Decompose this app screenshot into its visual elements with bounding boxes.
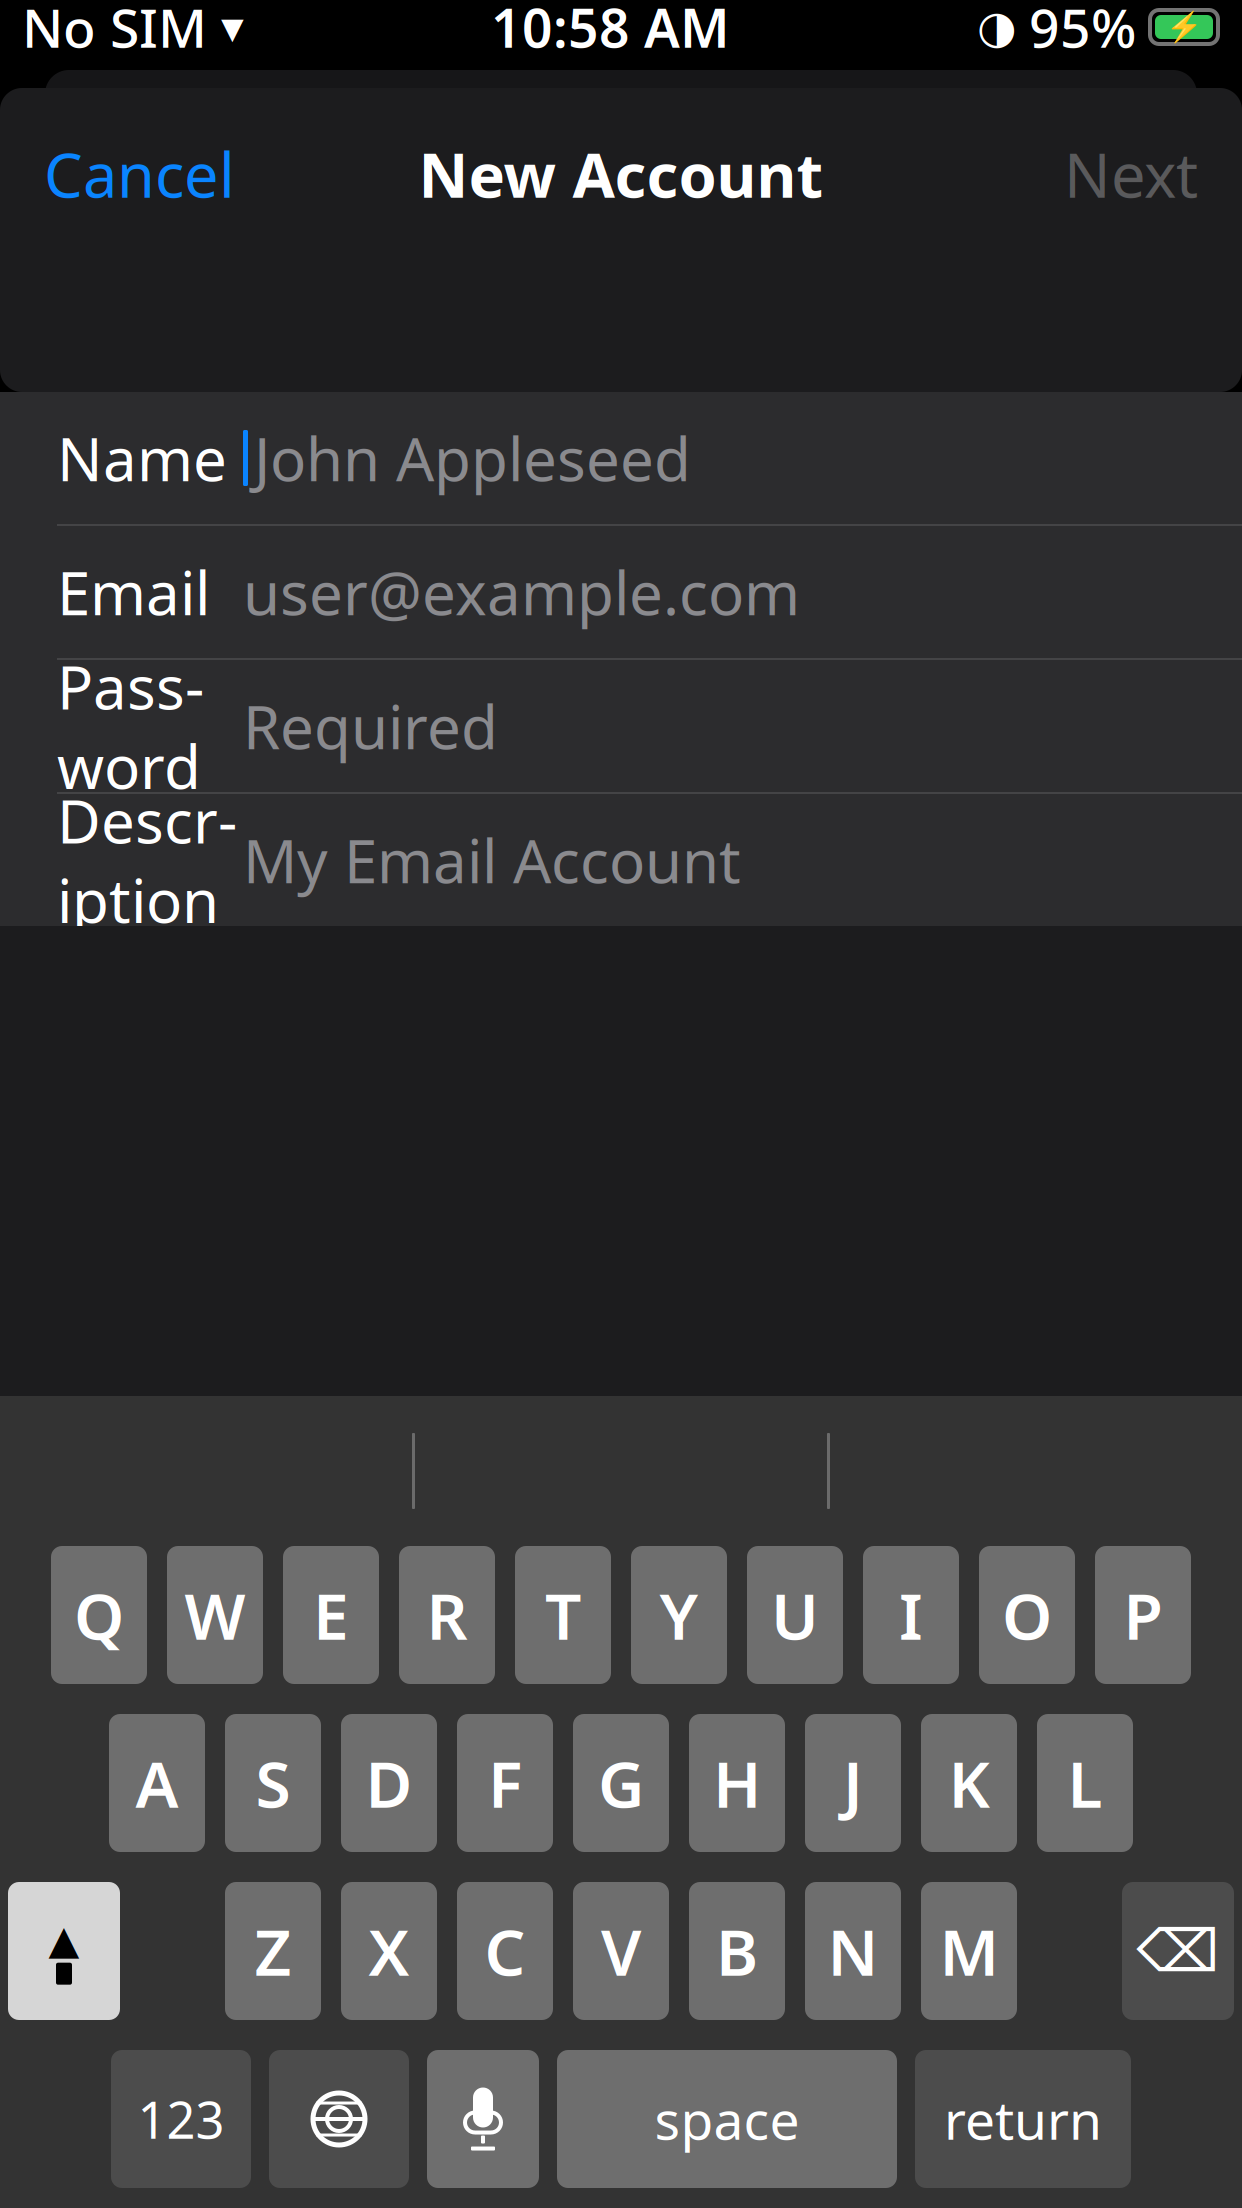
button[interactable]: C bbox=[457, 1882, 553, 2020]
staticText: M bbox=[939, 1908, 998, 1993]
staticText: J bbox=[843, 1740, 863, 1825]
button[interactable]: E bbox=[283, 1546, 379, 1684]
staticText: E bbox=[313, 1572, 349, 1657]
staticText: Required bbox=[243, 686, 498, 766]
staticText: Y bbox=[659, 1572, 698, 1657]
button[interactable]: L bbox=[1037, 1714, 1133, 1852]
button[interactable]: Delete bbox=[1122, 1882, 1234, 2020]
button[interactable]: Y bbox=[631, 1546, 727, 1684]
button[interactable]: W bbox=[167, 1546, 263, 1684]
staticText: T bbox=[545, 1572, 581, 1657]
button[interactable]: K bbox=[921, 1714, 1017, 1852]
button[interactable]: Next keyboard bbox=[269, 2050, 409, 2188]
staticText: U bbox=[771, 1572, 819, 1657]
staticText: 10:58 AM bbox=[491, 0, 730, 62]
button[interactable]: 123 bbox=[111, 2050, 251, 2188]
button[interactable]: D bbox=[341, 1714, 437, 1852]
button[interactable]: N bbox=[805, 1882, 901, 2020]
button[interactable]: Password bbox=[0, 660, 1242, 792]
staticText: ▾ bbox=[221, 1, 244, 53]
staticText: Description bbox=[57, 780, 237, 940]
button[interactable]: Q bbox=[51, 1546, 147, 1684]
staticText: X bbox=[368, 1908, 409, 1993]
staticText: N bbox=[827, 1908, 878, 1993]
button[interactable]: T bbox=[515, 1546, 611, 1684]
staticText: L bbox=[1067, 1740, 1102, 1825]
button[interactable]: Email bbox=[0, 526, 1242, 658]
button[interactable]: H bbox=[689, 1714, 785, 1852]
staticText: No SIM bbox=[22, 0, 207, 62]
staticText: V bbox=[601, 1908, 641, 1993]
staticText: ⚡ bbox=[1165, 10, 1202, 44]
button[interactable]: space bbox=[557, 2050, 897, 2188]
staticText: P bbox=[1123, 1572, 1162, 1657]
staticText: return bbox=[944, 2084, 1102, 2154]
staticText: user@example.com bbox=[243, 552, 800, 632]
button[interactable]: R bbox=[399, 1546, 495, 1684]
button[interactable]: B bbox=[689, 1882, 785, 2020]
button[interactable]: S bbox=[225, 1714, 321, 1852]
button[interactable]: Shift bbox=[8, 1882, 120, 2020]
staticText: R bbox=[426, 1572, 467, 1657]
staticText: Cancel bbox=[44, 133, 235, 215]
staticText: 95% bbox=[1029, 0, 1136, 62]
button[interactable]: J bbox=[805, 1714, 901, 1852]
staticText: Email bbox=[57, 552, 210, 632]
staticText: Next bbox=[1064, 133, 1198, 215]
staticText: G bbox=[598, 1740, 644, 1825]
button[interactable]: G bbox=[573, 1714, 669, 1852]
button[interactable]: X bbox=[341, 1882, 437, 2020]
button[interactable]: Next bbox=[1020, 115, 1242, 233]
button[interactable]: I bbox=[863, 1546, 959, 1684]
button[interactable]: Z bbox=[225, 1882, 321, 2020]
staticText: B bbox=[716, 1908, 758, 1993]
staticText: ⌫ bbox=[1136, 1918, 1219, 1984]
staticText: My Email Account bbox=[243, 820, 741, 900]
button[interactable]: F bbox=[457, 1714, 553, 1852]
staticText: O bbox=[1002, 1572, 1052, 1657]
staticText: F bbox=[488, 1740, 522, 1825]
staticText: John Appleseed bbox=[254, 418, 691, 498]
staticText: ◑ bbox=[977, 1, 1017, 53]
staticText: ▲ bbox=[48, 1917, 79, 1963]
staticText: Q bbox=[74, 1572, 124, 1657]
staticText: D bbox=[365, 1740, 412, 1825]
staticText: S bbox=[255, 1740, 290, 1825]
staticText: Name bbox=[57, 418, 227, 498]
button[interactable]: Cancel bbox=[0, 115, 279, 233]
button[interactable]: Description bbox=[0, 794, 1242, 926]
staticText: I bbox=[899, 1572, 923, 1657]
staticText: 123 bbox=[137, 2085, 224, 2153]
button[interactable]: U bbox=[747, 1546, 843, 1684]
button[interactable]: return bbox=[915, 2050, 1131, 2188]
button[interactable]: P bbox=[1095, 1546, 1191, 1684]
button[interactable]: Name bbox=[0, 392, 1242, 524]
button[interactable]: M bbox=[921, 1882, 1017, 2020]
button[interactable]: O bbox=[979, 1546, 1075, 1684]
staticText: C bbox=[484, 1908, 525, 1993]
staticText: K bbox=[948, 1740, 989, 1825]
button[interactable]: Dictation bbox=[427, 2050, 539, 2188]
staticText: Password bbox=[57, 646, 204, 806]
staticText: A bbox=[135, 1740, 178, 1825]
staticText: space bbox=[654, 2084, 799, 2154]
staticText: H bbox=[713, 1740, 761, 1825]
staticText: New Account bbox=[418, 133, 823, 215]
button[interactable]: A bbox=[109, 1714, 205, 1852]
staticText: Z bbox=[254, 1908, 291, 1993]
staticText: W bbox=[184, 1572, 245, 1657]
button[interactable]: V bbox=[573, 1882, 669, 2020]
